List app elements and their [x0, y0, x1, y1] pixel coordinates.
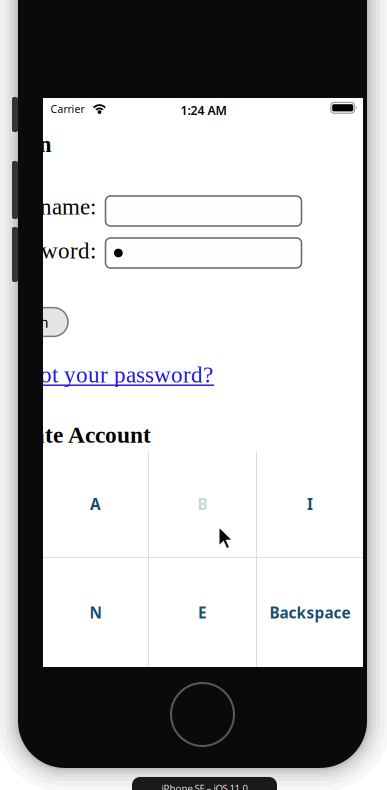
button[interactable]: B [149, 451, 256, 557]
staticText: Login [9, 312, 48, 332]
staticText: E [198, 602, 207, 623]
staticText: Username: [0, 194, 96, 219]
button[interactable]: N [43, 558, 148, 667]
staticText: Login [0, 132, 51, 157]
staticText: A [90, 494, 101, 514]
button[interactable]: A [43, 451, 148, 557]
staticText: Carrier [50, 102, 84, 116]
button[interactable]: E [149, 558, 256, 667]
staticText: Create Account [0, 422, 151, 448]
staticText: 1:24 AM [180, 102, 226, 118]
button[interactable]: Forgot your password? [0, 362, 216, 389]
button[interactable]: Login [0, 308, 68, 336]
button[interactable]: Backspace [257, 558, 363, 667]
staticText: Backspace [269, 602, 350, 623]
staticText: Forgot your password? [0, 362, 213, 387]
staticText: Password: [0, 238, 96, 263]
staticText: N [89, 602, 101, 623]
staticText: B [197, 494, 207, 514]
staticText: I [307, 494, 313, 514]
button[interactable]: I [257, 451, 363, 557]
staticText: iPhone SE – iOS 11.0 [161, 781, 247, 790]
